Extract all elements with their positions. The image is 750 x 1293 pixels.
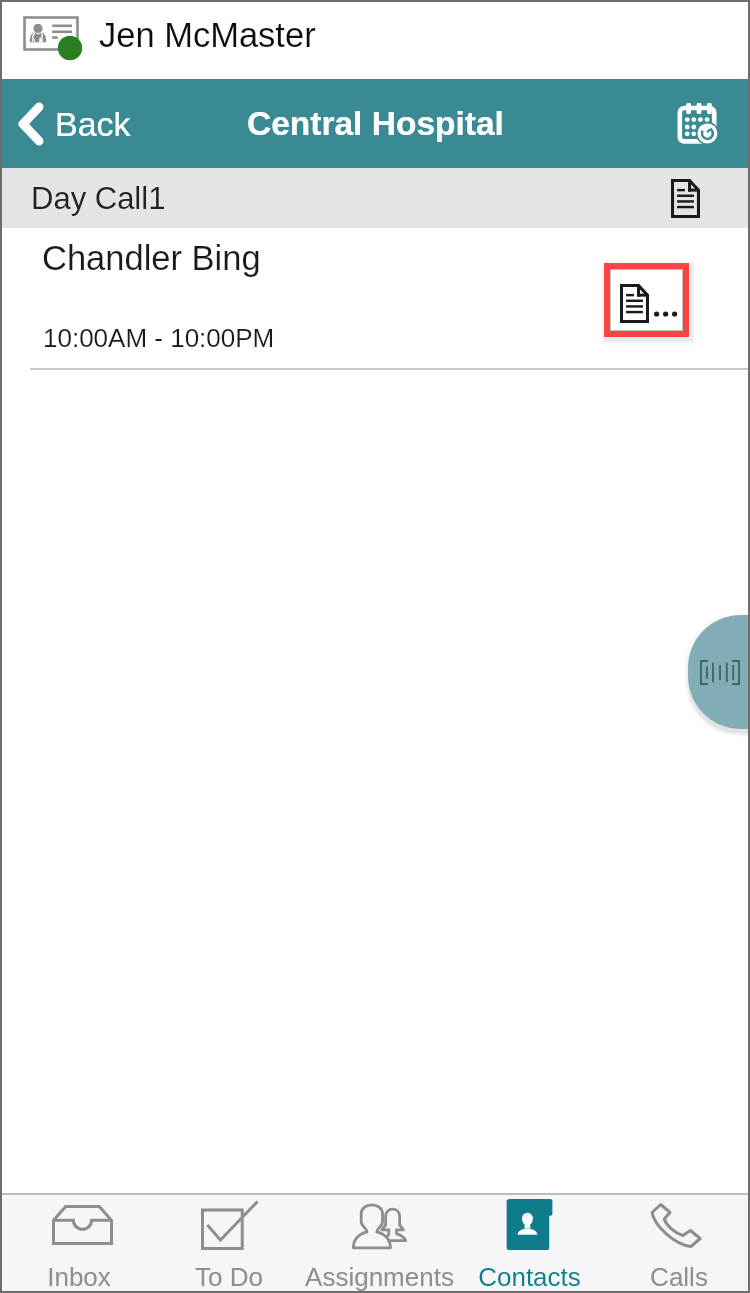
staticText: To Do [195,1262,263,1291]
button[interactable]: Jen McMaster [0,0,750,79]
button[interactable]: Contacts [450,1193,600,1293]
button[interactable]: Schedule [653,79,750,168]
button[interactable]: To Do [150,1193,300,1293]
staticText: Contacts [478,1262,581,1291]
button[interactable]: Notes [647,179,750,218]
button[interactable]: Chandler Bing [0,228,750,370]
button[interactable]: Calls [600,1193,750,1293]
button[interactable]: Scan barcode [688,615,750,729]
staticText: Chandler Bing [42,239,261,278]
button[interactable]: More options [611,270,682,330]
button[interactable]: Back [0,79,145,168]
staticText: 10:00AM - 10:00PM [43,323,275,352]
staticText: Jen McMaster [99,16,316,55]
staticText: Assignments [305,1262,454,1291]
staticText: Back [55,105,131,143]
staticText: Inbox [47,1262,111,1291]
staticText: Central Hospital [247,105,504,142]
button[interactable]: Inbox [0,1193,150,1293]
staticText: Calls [650,1262,708,1291]
staticText: Day Call1 [31,181,166,216]
button[interactable]: Assignments [300,1193,450,1293]
